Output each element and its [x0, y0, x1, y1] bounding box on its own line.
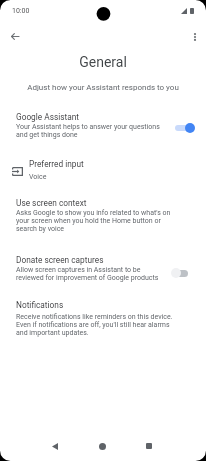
staticText: Donate screen captures — [16, 255, 104, 265]
button[interactable]: Use screen context — [0, 196, 206, 238]
staticText: Allow screen captures in Assistant to be… — [16, 266, 168, 282]
staticText: 10:00 — [12, 7, 30, 15]
staticText: Asks Google to show you info related to … — [16, 209, 176, 233]
button[interactable]: Recents — [134, 431, 164, 461]
staticText: Voice — [29, 173, 47, 181]
button[interactable]: More options — [184, 26, 205, 47]
button[interactable]: Donate screen captures — [0, 253, 206, 287]
staticText: General — [0, 54, 206, 70]
staticText: Preferred input — [29, 159, 84, 169]
button[interactable]: Google Assistant — [0, 110, 206, 144]
button[interactable]: Preferred input — [0, 154, 206, 186]
button[interactable]: Notifications — [0, 298, 206, 342]
button[interactable]: Back — [4, 26, 25, 47]
staticText: Receive notifications like reminders on … — [16, 313, 180, 337]
staticText: Notifications — [16, 300, 64, 310]
button[interactable]: Toggle off — [171, 267, 191, 279]
staticText: Your Assistant helps to answer your ques… — [16, 123, 168, 139]
staticText: Google Assistant — [16, 112, 80, 122]
staticText: Adjust how your Assistant responds to yo… — [0, 83, 206, 92]
button[interactable]: Home — [87, 431, 117, 461]
button[interactable]: Toggle on — [175, 122, 195, 134]
button[interactable]: Back — [40, 431, 70, 461]
staticText: Use screen context — [16, 198, 87, 208]
